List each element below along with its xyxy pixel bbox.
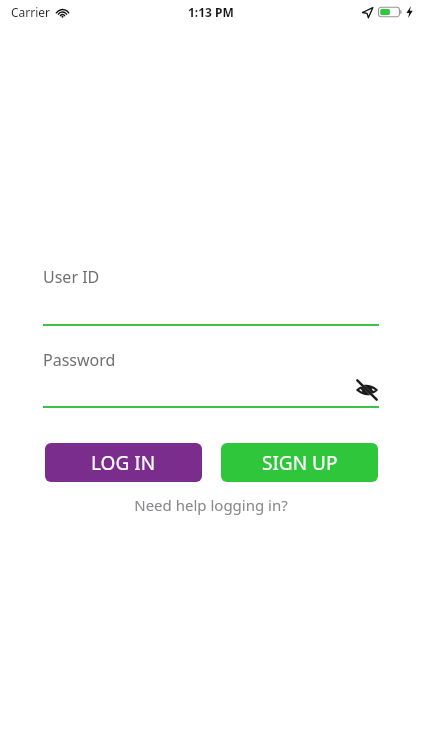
staticText: SIGN UP (262, 450, 338, 476)
button[interactable]: LOG IN (45, 443, 202, 482)
staticText: 1:13 PM (188, 4, 234, 20)
button[interactable]: SIGN UP (221, 443, 378, 482)
staticText: Password (43, 349, 116, 371)
staticText: LOG IN (91, 450, 156, 476)
button[interactable]: Show password (352, 375, 382, 405)
staticText: User ID (43, 266, 100, 288)
staticText: Need help logging in? (134, 495, 288, 515)
button[interactable]: Need help logging in? (0, 493, 422, 517)
staticText: Carrier (11, 4, 51, 20)
